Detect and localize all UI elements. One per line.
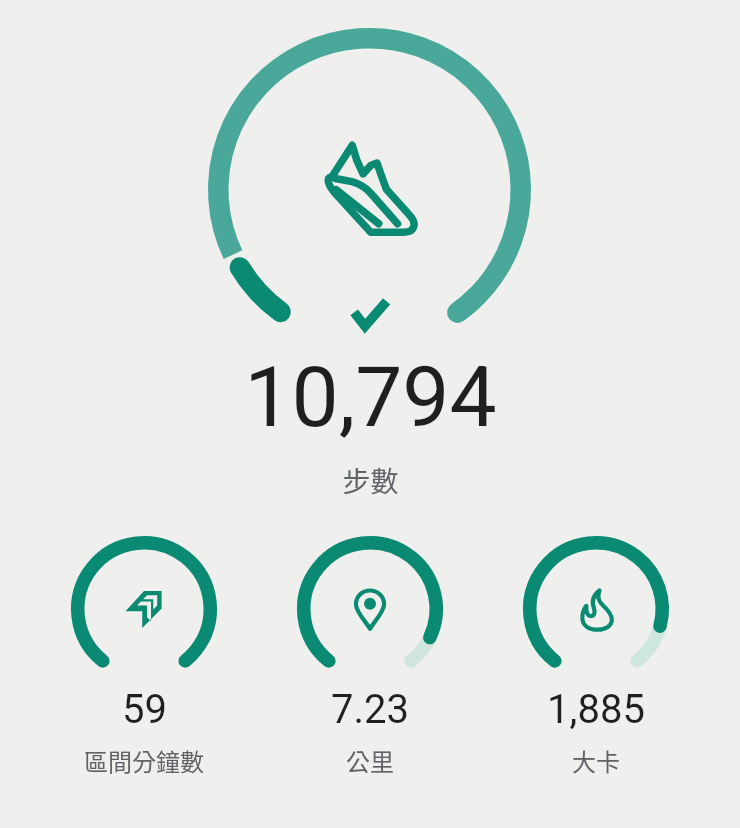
staticText: 步數 [342,460,399,501]
button[interactable]: 7.23 [257,536,483,778]
button[interactable]: Steps goal ring [208,28,531,351]
staticText: 7.23 [331,686,409,733]
staticText: 公里 [346,743,394,778]
button[interactable]: 1,885 [483,536,709,778]
button[interactable]: 59 [31,536,257,778]
staticText: 10,794 [244,348,497,446]
staticText: 大卡 [572,743,620,778]
staticText: 59 [122,686,167,733]
staticText: 區間分鐘數 [84,743,204,778]
staticText: 1,885 [547,686,645,733]
